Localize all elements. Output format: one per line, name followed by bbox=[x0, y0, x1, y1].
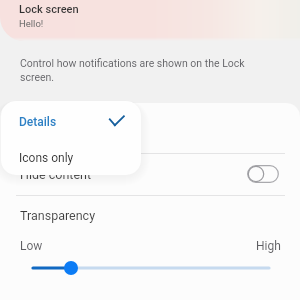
staticText: Transparency bbox=[20, 208, 96, 223]
staticText: Control how notifications are shown on t… bbox=[20, 57, 245, 84]
staticText: Hide content bbox=[20, 167, 92, 182]
button[interactable]: Icons only bbox=[1, 138, 141, 175]
staticText: High bbox=[256, 239, 281, 253]
button[interactable]: Details bbox=[1, 101, 141, 138]
staticText: Low bbox=[20, 239, 43, 253]
staticText: Icons only bbox=[19, 151, 74, 165]
button[interactable]: Hide content toggle bbox=[247, 165, 279, 183]
staticText: Lock screen bbox=[19, 3, 79, 16]
button[interactable]: Transparency slider bbox=[0, 256, 300, 280]
staticText: Hello! bbox=[19, 18, 44, 29]
button[interactable]: Hide content bbox=[0, 154, 300, 195]
staticText: Details bbox=[19, 115, 57, 129]
